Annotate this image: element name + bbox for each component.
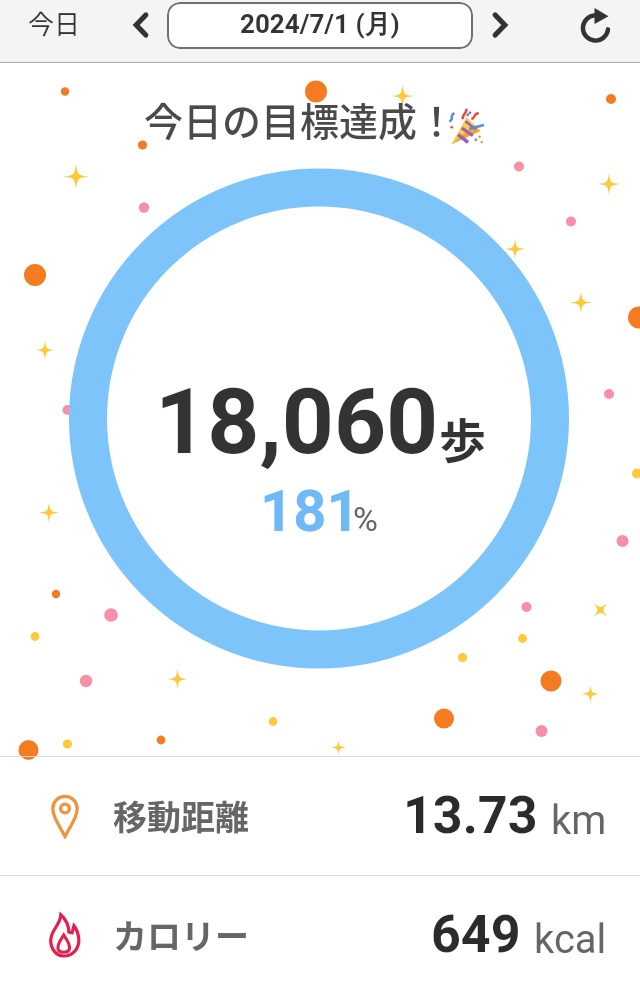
button[interactable]: 2024/7/1 (月)	[167, 2, 473, 49]
staticText: %	[353, 499, 378, 539]
staticText: 13.73	[403, 785, 538, 846]
staticText: 181	[260, 477, 360, 545]
button[interactable]: Previous day	[117, 1, 165, 49]
button[interactable]: カロリー	[0, 875, 640, 994]
staticText: 歩	[439, 403, 486, 471]
button[interactable]: Refresh	[573, 2, 621, 50]
staticText: kcal	[534, 916, 607, 963]
button[interactable]: 移動距離	[0, 756, 640, 875]
staticText: 649	[431, 904, 521, 965]
staticText: 移動距離	[113, 791, 249, 840]
staticText: 今日の目標達成！	[144, 91, 457, 147]
staticText: 18,060	[155, 369, 439, 476]
staticText: カロリー	[113, 910, 249, 959]
staticText: km	[551, 797, 607, 844]
button[interactable]: Next day	[476, 1, 524, 49]
button[interactable]: 今日	[12, 0, 97, 63]
staticText: 2024/7/1 (月)	[240, 8, 400, 41]
staticText: 今日	[28, 4, 81, 42]
